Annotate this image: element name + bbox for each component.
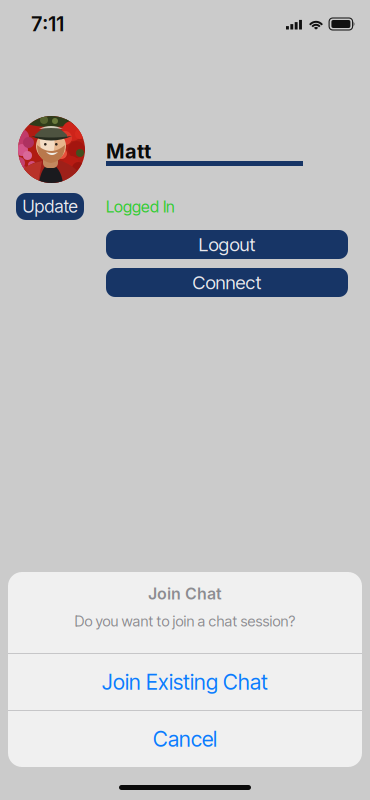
staticText: 7:11 xyxy=(31,12,64,36)
staticText: Logged In xyxy=(106,197,175,216)
staticText: Update xyxy=(22,196,77,217)
staticText: Join Chat xyxy=(148,584,222,603)
staticText: Connect xyxy=(192,271,261,294)
button[interactable]: Cancel xyxy=(8,711,362,767)
staticText: Do you want to join a chat session? xyxy=(74,612,295,630)
staticText: Cancel xyxy=(153,726,217,752)
button[interactable]: Join Existing Chat xyxy=(8,654,362,710)
staticText: Join Existing Chat xyxy=(102,669,268,695)
button[interactable]: Update xyxy=(16,193,84,220)
staticText: Matt xyxy=(106,139,151,163)
staticText: Logout xyxy=(198,233,255,256)
button[interactable]: Connect xyxy=(106,268,348,297)
button[interactable]: Logout xyxy=(106,230,348,259)
